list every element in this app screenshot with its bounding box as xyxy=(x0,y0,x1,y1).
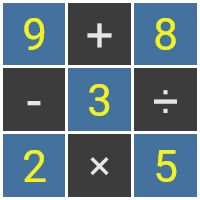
button[interactable]: 3 xyxy=(68,68,131,131)
staticText: 8 xyxy=(153,9,178,61)
staticText: 5 xyxy=(153,141,178,193)
button[interactable]: 9 xyxy=(3,3,65,65)
button[interactable]: Minus xyxy=(3,68,65,131)
button[interactable]: Multiply xyxy=(68,134,131,197)
staticText: 9 xyxy=(22,9,47,61)
button[interactable]: 5 xyxy=(134,134,197,197)
button[interactable]: 8 xyxy=(134,3,197,65)
staticText: 3 xyxy=(87,75,112,127)
staticText: 2 xyxy=(22,141,47,193)
button[interactable]: 2 xyxy=(3,134,65,197)
button[interactable]: Plus xyxy=(68,3,131,65)
button[interactable]: Divide xyxy=(134,68,197,131)
